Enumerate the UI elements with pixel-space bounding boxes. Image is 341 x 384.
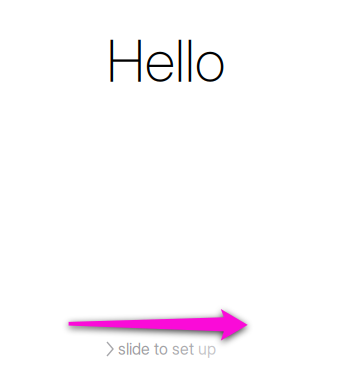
staticText: to bbox=[154, 339, 168, 359]
button[interactable]: slide bbox=[107, 339, 216, 359]
staticText: up bbox=[198, 339, 216, 359]
staticText: Hello bbox=[106, 26, 225, 96]
staticText: slide bbox=[118, 339, 150, 359]
staticText: set bbox=[172, 339, 194, 359]
